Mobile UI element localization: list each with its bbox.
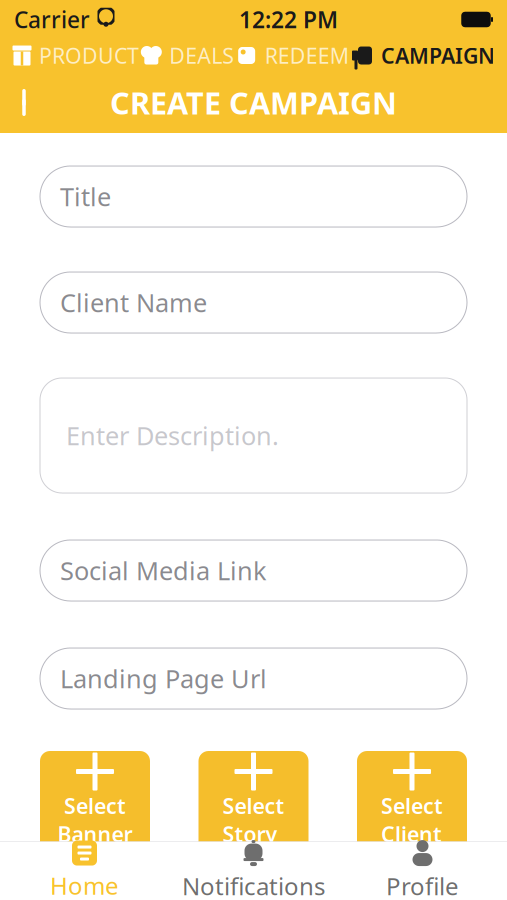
button[interactable]: Select <box>40 751 150 863</box>
staticText: CAMPAIGN <box>381 41 495 70</box>
staticText: Title <box>60 180 111 213</box>
button[interactable]: Social Media Link <box>40 540 467 601</box>
button[interactable]: Profile <box>338 842 507 900</box>
button[interactable]: Back <box>0 80 54 124</box>
button[interactable]: Client Name <box>40 272 467 333</box>
button[interactable]: REDEEM <box>236 41 349 70</box>
staticText: Carrier <box>14 4 90 34</box>
staticText: Select Client <box>381 791 443 848</box>
staticText: Image <box>221 848 286 876</box>
staticText: 12:22 PM <box>239 4 338 34</box>
staticText: Profile <box>386 870 459 900</box>
button[interactable]: CAMPAIGN <box>350 41 495 70</box>
staticText: DEALS <box>169 41 234 70</box>
button[interactable]: Home <box>0 842 169 900</box>
button[interactable]: Enter Description. <box>40 378 467 493</box>
staticText: Enter Description. <box>66 419 279 452</box>
button[interactable]: PRODUCT <box>12 41 139 70</box>
staticText: PRODUCT <box>39 41 139 70</box>
button[interactable]: DEALS <box>140 41 234 70</box>
button[interactable]: Select Story <box>198 751 308 863</box>
staticText: Social Media Link <box>60 554 267 587</box>
staticText: REDEEM <box>265 41 349 70</box>
button[interactable]: Notifications <box>169 842 338 900</box>
staticText: Landing Page Url <box>60 662 267 695</box>
staticText: Home <box>50 870 119 900</box>
button[interactable]: Landing Page Url <box>40 648 467 709</box>
staticText: Select Story <box>222 791 284 848</box>
staticText: Banner Image <box>57 820 132 876</box>
button[interactable]: Title <box>40 166 467 227</box>
button[interactable]: Select Client <box>357 751 467 863</box>
staticText: CREATE CAMPAIGN <box>110 82 397 123</box>
staticText: Logo <box>386 848 437 876</box>
staticText: Select <box>64 791 126 820</box>
staticText: Client Name <box>60 286 207 319</box>
staticText: Notifications <box>182 870 325 900</box>
